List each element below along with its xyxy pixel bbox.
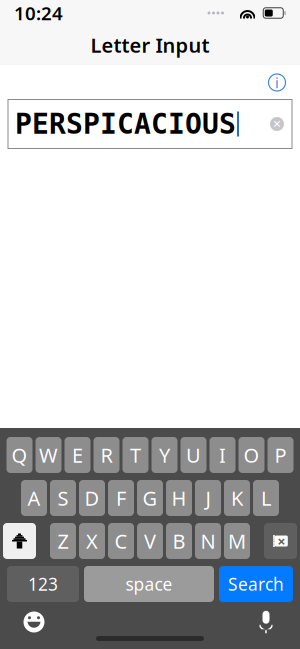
staticText: G xyxy=(142,485,157,511)
staticText: R xyxy=(100,442,112,468)
staticText: O xyxy=(243,442,259,468)
button[interactable]: Dictate xyxy=(254,610,278,634)
button[interactable]: 123 xyxy=(7,566,79,602)
button[interactable]: Clear text xyxy=(264,111,290,137)
staticText: Q xyxy=(11,442,27,468)
staticText: N xyxy=(200,528,215,554)
staticText: C xyxy=(114,528,127,554)
staticText: F xyxy=(116,485,126,511)
button[interactable]: R xyxy=(93,437,119,473)
button[interactable]: O xyxy=(238,437,264,473)
staticText: L xyxy=(261,485,271,511)
staticText: B xyxy=(172,528,185,554)
staticText: T xyxy=(130,442,141,468)
button[interactable]: L xyxy=(253,480,279,516)
staticText: 123 xyxy=(28,572,58,595)
button[interactable]: X xyxy=(79,523,105,559)
staticText: S xyxy=(57,485,68,511)
button[interactable]: D xyxy=(79,480,105,516)
button[interactable]: V xyxy=(137,523,163,559)
button[interactable]: W xyxy=(35,437,61,473)
button[interactable]: G xyxy=(137,480,163,516)
staticText: Y xyxy=(159,442,170,468)
button[interactable]: M xyxy=(224,523,250,559)
staticText: M xyxy=(228,528,246,554)
button[interactable]: Info xyxy=(262,67,292,97)
staticText: P xyxy=(274,442,286,468)
staticText: K xyxy=(231,485,243,511)
button[interactable]: N xyxy=(195,523,221,559)
staticText: H xyxy=(171,485,186,511)
staticText: Z xyxy=(57,528,68,554)
staticText: X xyxy=(86,528,98,554)
button[interactable]: Search xyxy=(219,566,293,602)
staticText: J xyxy=(205,485,210,511)
button[interactable]: B xyxy=(166,523,192,559)
staticText: V xyxy=(144,528,156,554)
button[interactable]: Y xyxy=(151,437,177,473)
staticText: I xyxy=(219,442,226,468)
staticText: Letter Input xyxy=(90,32,209,58)
button[interactable]: Emoji xyxy=(22,610,46,634)
button[interactable]: T xyxy=(122,437,148,473)
staticText: ✕ xyxy=(272,118,281,130)
staticText: 10:24 xyxy=(14,1,63,25)
button[interactable]: A xyxy=(21,480,47,516)
button[interactable]: H xyxy=(166,480,192,516)
button[interactable]: U xyxy=(180,437,206,473)
button[interactable]: I xyxy=(209,437,235,473)
button[interactable]: F xyxy=(108,480,134,516)
button[interactable]: K xyxy=(224,480,250,516)
staticText: space xyxy=(125,572,172,595)
button[interactable]: S xyxy=(50,480,76,516)
staticText: E xyxy=(72,442,83,468)
button[interactable]: J xyxy=(195,480,221,516)
staticText: PERSPICACIOUS xyxy=(15,108,236,140)
button[interactable]: Q xyxy=(6,437,32,473)
button[interactable]: Shift xyxy=(3,523,36,559)
button[interactable]: Delete xyxy=(264,523,297,559)
staticText: A xyxy=(27,485,40,511)
button[interactable]: C xyxy=(108,523,134,559)
staticText: D xyxy=(84,485,99,511)
staticText: × xyxy=(277,531,285,551)
button[interactable]: P xyxy=(267,437,293,473)
staticText: Search xyxy=(228,572,284,595)
button[interactable]: E xyxy=(64,437,90,473)
button[interactable]: Z xyxy=(50,523,76,559)
staticText: W xyxy=(39,442,58,468)
button[interactable]: space xyxy=(84,566,214,602)
staticText: i xyxy=(275,73,279,92)
staticText: U xyxy=(186,442,201,468)
